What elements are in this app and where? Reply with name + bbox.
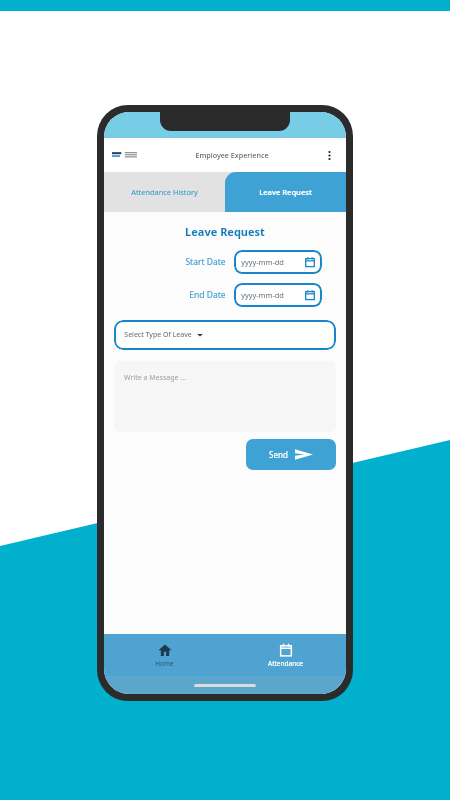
- staticText: Leave Request: [259, 187, 312, 197]
- staticText: Home: [155, 659, 174, 668]
- staticText: Employee Experience: [195, 150, 269, 160]
- staticText: Write a Message ...: [124, 373, 186, 383]
- staticText: Send: [269, 449, 288, 460]
- button[interactable]: Leave Request: [225, 172, 346, 212]
- staticText: End Date: [189, 289, 226, 301]
- button[interactable]: Attendance: [225, 634, 346, 676]
- button[interactable]: More options: [320, 146, 338, 164]
- staticText: Select Type Of Leave: [124, 330, 192, 340]
- button[interactable]: Attendance History: [104, 172, 225, 212]
- button[interactable]: Write a Message ...: [114, 361, 336, 432]
- staticText: yyyy-mm-dd: [241, 257, 284, 267]
- button[interactable]: Send: [246, 439, 336, 470]
- staticText: Attendance History: [131, 187, 198, 197]
- staticText: yyyy-mm-dd: [241, 290, 284, 300]
- staticText: Leave Request: [185, 224, 265, 239]
- button[interactable]: Home: [104, 634, 225, 676]
- staticText: Attendance: [268, 659, 303, 668]
- button[interactable]: yyyy-mm-dd: [234, 250, 322, 274]
- button[interactable]: yyyy-mm-dd: [234, 283, 322, 307]
- button[interactable]: Select Type Of Leave: [114, 320, 336, 350]
- staticText: Start Date: [185, 256, 226, 268]
